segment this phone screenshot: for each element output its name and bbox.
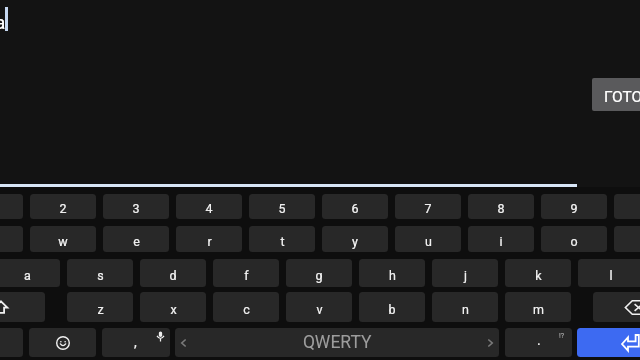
- staticText: i: [499, 234, 503, 249]
- staticText: u: [425, 234, 432, 249]
- staticText: .: [537, 332, 541, 348]
- staticText: 7: [424, 201, 432, 216]
- button[interactable]: 7: [395, 194, 461, 219]
- staticText: e: [133, 234, 140, 249]
- button[interactable]: Space: [175, 328, 499, 357]
- button[interactable]: g: [286, 259, 352, 287]
- staticText: z: [97, 302, 104, 317]
- button[interactable]: 2: [30, 194, 96, 219]
- button[interactable]: h: [359, 259, 425, 287]
- button[interactable]: 5: [249, 194, 315, 219]
- button[interactable]: d: [140, 259, 206, 287]
- staticText: s: [97, 268, 104, 283]
- staticText: n: [462, 302, 469, 317]
- button[interactable]: Comma: [102, 328, 170, 357]
- button[interactable]: 8: [468, 194, 534, 219]
- staticText: b: [388, 302, 396, 317]
- button[interactable]: f: [213, 259, 279, 287]
- button[interactable]: k: [505, 259, 571, 287]
- button[interactable]: v: [286, 292, 352, 322]
- staticText: 6: [351, 201, 359, 216]
- staticText: v: [316, 302, 323, 317]
- staticText: h: [389, 268, 396, 283]
- button[interactable]: 4: [176, 194, 242, 219]
- button[interactable]: m: [505, 292, 571, 322]
- button[interactable]: a: [0, 259, 60, 287]
- button[interactable]: w: [30, 226, 96, 252]
- staticText: l: [609, 268, 613, 283]
- staticText: m: [533, 302, 544, 317]
- button[interactable]: j: [432, 259, 498, 287]
- button[interactable]: Emoji: [29, 328, 96, 357]
- staticText: 2: [59, 201, 67, 216]
- staticText: ГОТОВО: [604, 88, 640, 106]
- staticText: t: [280, 234, 285, 249]
- button[interactable]: t: [249, 226, 315, 252]
- button[interactable]: z: [67, 292, 133, 322]
- button[interactable]: y: [322, 226, 388, 252]
- button[interactable]: ГОТОВО: [592, 78, 640, 111]
- button[interactable]: b: [359, 292, 425, 322]
- staticText: j: [464, 268, 467, 283]
- staticText: r: [207, 234, 212, 249]
- button[interactable]: Shift: [0, 292, 45, 322]
- button[interactable]: e: [103, 226, 169, 252]
- staticText: c: [243, 302, 250, 317]
- staticText: 4: [205, 201, 213, 216]
- button[interactable]: Enter: [577, 328, 640, 357]
- staticText: o: [570, 234, 578, 249]
- staticText: 3: [132, 201, 140, 216]
- staticText: 9: [570, 201, 578, 216]
- button[interactable]: r: [176, 226, 242, 252]
- staticText: !?: [559, 332, 565, 340]
- staticText: k: [535, 268, 542, 283]
- staticText: d: [169, 268, 177, 283]
- staticText: 5: [278, 201, 286, 216]
- button[interactable]: i: [468, 226, 534, 252]
- button[interactable]: u: [395, 226, 461, 252]
- button[interactable]: x: [140, 292, 206, 322]
- button[interactable]: s: [67, 259, 133, 287]
- staticText: y: [352, 234, 358, 249]
- button[interactable]: Period: [505, 328, 572, 357]
- button[interactable]: c: [213, 292, 279, 322]
- staticText: f: [244, 268, 249, 283]
- button[interactable]: o: [541, 226, 607, 252]
- button[interactable]: Backspace: [593, 292, 640, 322]
- button[interactable]: l: [578, 259, 640, 287]
- staticText: g: [315, 268, 323, 283]
- button[interactable]: 6: [322, 194, 388, 219]
- staticText: QWERTY: [303, 332, 372, 353]
- staticText: 8: [497, 201, 505, 216]
- staticText: ,: [134, 334, 137, 350]
- staticText: w: [58, 234, 68, 249]
- staticText: a: [24, 268, 31, 283]
- staticText: x: [170, 302, 177, 317]
- button[interactable]: n: [432, 292, 498, 322]
- button[interactable]: 9: [541, 194, 607, 219]
- button[interactable]: 3: [103, 194, 169, 219]
- staticText: a: [0, 11, 6, 33]
